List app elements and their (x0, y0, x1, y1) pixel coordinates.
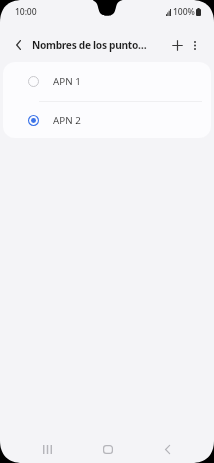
button[interactable]: APN 2 (3, 102, 211, 138)
staticText: 10:00 (15, 6, 37, 18)
button[interactable]: Back (152, 434, 183, 463)
button[interactable]: Recent apps (32, 434, 63, 463)
button[interactable]: More options (183, 30, 207, 60)
button[interactable]: Add (164, 30, 190, 60)
button[interactable]: Home (92, 434, 123, 463)
button[interactable]: APN 1 (3, 62, 211, 101)
staticText: 100% (173, 6, 195, 18)
staticText: APN 1 (53, 75, 81, 88)
button[interactable]: Back (5, 30, 31, 60)
staticText: Nombres de los punto… (32, 38, 147, 52)
staticText: APN 2 (53, 114, 81, 127)
